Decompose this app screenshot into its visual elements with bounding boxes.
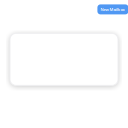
- button[interactable]: New Mailbox: [97, 4, 128, 14]
- staticText: New Mailbox: [100, 7, 124, 12]
